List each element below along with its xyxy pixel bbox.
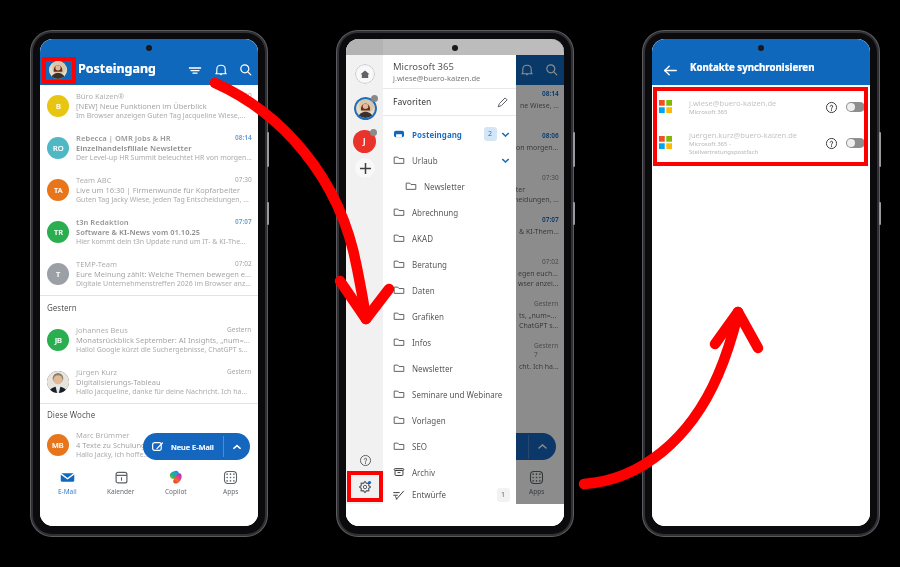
button[interactable]: Kalender (94, 465, 148, 500)
staticText: Gestern 7 (534, 341, 559, 359)
staticText: Hier kommt dein t3n Update rund um IT- &… (76, 237, 252, 247)
button[interactable]: Account Jacqueline (354, 97, 377, 120)
staticText: j.wiese@buero-kaizen.de (393, 73, 481, 83)
staticText: Seminare und Webinare (412, 389, 503, 400)
staticText: Posteingang (412, 129, 462, 140)
button[interactable]: Help (824, 136, 838, 150)
button[interactable]: Search (236, 60, 256, 80)
button[interactable]: Entwürfe (383, 485, 516, 504)
staticText: Newsletter (424, 181, 465, 192)
button[interactable]: Neue E-Mail (143, 433, 250, 460)
staticText: iter heidungen, ... (514, 185, 559, 205)
button[interactable]: Posteingang (383, 121, 516, 147)
button[interactable]: Apps (203, 465, 258, 500)
button[interactable]: j.wiese@buero-kaizen.de (652, 90, 870, 123)
staticText: Johannes Beus (76, 325, 224, 335)
button[interactable]: Newsletter (383, 173, 516, 199)
button[interactable]: Account (49, 61, 67, 79)
staticText: Beratung (412, 259, 448, 270)
staticText: Live um 16:30 | Firmenwunde für Kopfarbe… (76, 185, 241, 195)
button[interactable]: TA (40, 169, 258, 211)
staticText: Digitalisierungs-Tableau (76, 377, 161, 387)
staticText: Kontakte synchronisieren (690, 61, 815, 74)
button[interactable]: Apps (509, 465, 564, 500)
button[interactable]: Settings (353, 475, 377, 499)
button[interactable]: Urlaub (383, 147, 516, 173)
button[interactable]: Abrechnung (383, 199, 516, 225)
button[interactable]: T (40, 253, 258, 295)
button[interactable]: Home (355, 64, 375, 84)
button[interactable]: Daten (383, 277, 516, 303)
staticText: Einzelhandelsfiliale Newsletter (76, 143, 192, 153)
button[interactable]: Seminare und Webinare (383, 381, 516, 407)
staticText: TR (54, 227, 63, 237)
staticText: Stellvertretungspostfach (689, 148, 759, 156)
button[interactable]: Newsletter (383, 355, 516, 381)
button[interactable]: JB (40, 319, 258, 361)
button[interactable]: Grafiken (383, 303, 516, 329)
staticText: T (56, 269, 61, 279)
staticText: Digitale Unternehmenstreffen 2026 im Bro… (76, 279, 252, 289)
staticText: Microsoft 365 (689, 108, 728, 116)
staticText: on morgen... (516, 143, 559, 153)
button[interactable]: Vorlagen (383, 407, 516, 433)
button[interactable]: Copilot (148, 465, 203, 500)
button[interactable]: RO (40, 127, 258, 169)
button[interactable]: Help (824, 100, 838, 114)
staticText: TA (54, 185, 63, 195)
staticText: ts, „num=... ChatGPT s... (519, 311, 559, 331)
staticText: Eure Meinung zählt: Welche Themen bewege… (76, 269, 252, 279)
button[interactable]: SEO (383, 433, 516, 459)
button[interactable]: juergen.kurz@buero-kaizen.de (652, 123, 870, 162)
button[interactable]: Toggle sync (846, 102, 865, 112)
staticText: [NEW] Neue Funktionen im Überblick (76, 101, 207, 111)
staticText: Büro Kaizen® (76, 91, 232, 101)
staticText: Kalender (107, 487, 135, 496)
button[interactable]: Jürgen Kurz (40, 361, 258, 403)
staticText: Daten (412, 285, 435, 296)
button[interactable]: Account Juergen (353, 130, 376, 153)
staticText: 07:40 (235, 91, 252, 100)
button[interactable]: TR (40, 211, 258, 253)
button[interactable]: Favoriten (383, 89, 516, 115)
staticText: 07:30 (542, 173, 559, 182)
staticText: juergen.kurz@buero-kaizen.de (689, 130, 798, 140)
button[interactable]: AKAD (383, 225, 516, 251)
button[interactable]: Toggle sync (846, 138, 865, 148)
staticText: Hallo Jacqueline, danke für deine Nachri… (76, 387, 248, 397)
staticText: Entwürfe (412, 489, 447, 500)
button[interactable]: Add account (355, 158, 375, 178)
staticText: Archiv (412, 467, 436, 478)
staticText: Copilot (165, 487, 187, 496)
staticText: Diese Woche (47, 409, 96, 420)
button[interactable]: Archiv (383, 459, 516, 485)
staticText: MB (52, 440, 64, 450)
button[interactable]: Notifications (211, 60, 231, 80)
button[interactable]: Help (355, 450, 375, 470)
button[interactable]: Infos (383, 329, 516, 355)
staticText: Hallo Jacky, ich hoffe... (76, 450, 149, 460)
staticText: cht. Ich ha... (519, 362, 559, 372)
staticText: Der Level-up HR Summit beleuchtet HR von… (76, 153, 252, 163)
staticText: 07:02 (542, 257, 559, 266)
staticText: 07:07 (235, 217, 252, 226)
button[interactable]: Beratung (383, 251, 516, 277)
button[interactable]: Back (661, 61, 679, 79)
staticText: Marc Brümmer (76, 430, 249, 440)
staticText: JB (55, 335, 62, 345)
button[interactable]: Filter (185, 60, 205, 80)
button[interactable]: E-Mail (40, 465, 94, 500)
staticText: SEO (412, 441, 428, 452)
staticText: J (363, 135, 366, 148)
staticText: Gestern (534, 299, 559, 308)
staticText: Im Browser anzeigen Guten Tag Jacqueline… (76, 111, 246, 121)
staticText: Abrechnung (412, 207, 459, 218)
staticText: 4 Texte zu Schulungen (76, 440, 155, 450)
button[interactable]: B (40, 85, 258, 127)
staticText: Hallo! Google kürzt die Suchergebnisse, … (76, 345, 248, 355)
staticText: Monatsrückblick September: AI Insights, … (76, 335, 250, 345)
staticText: Urlaub (412, 155, 438, 166)
staticText: Microsoft 365 - (689, 140, 731, 148)
button[interactable]: MB (40, 424, 258, 465)
staticText: 07:30 (235, 175, 252, 184)
